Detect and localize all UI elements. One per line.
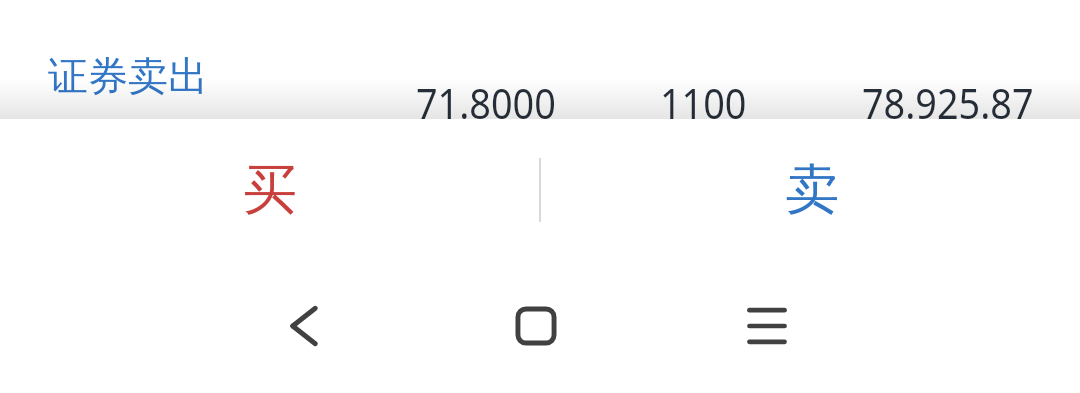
button[interactable]: Home: [476, 266, 596, 386]
staticText: 71.8000: [416, 74, 556, 131]
staticText: 卖: [785, 156, 839, 224]
button[interactable]: Menu: [707, 266, 827, 386]
button[interactable]: 证券卖出: [0, 0, 1080, 119]
staticText: 1100: [660, 74, 747, 131]
staticText: 买: [243, 156, 297, 224]
button[interactable]: Back: [244, 266, 364, 386]
button[interactable]: 卖: [540, 119, 1080, 234]
button[interactable]: 买: [0, 119, 540, 234]
staticText: 78.925.87: [862, 74, 1034, 131]
staticText: 证券卖出: [48, 51, 208, 101]
